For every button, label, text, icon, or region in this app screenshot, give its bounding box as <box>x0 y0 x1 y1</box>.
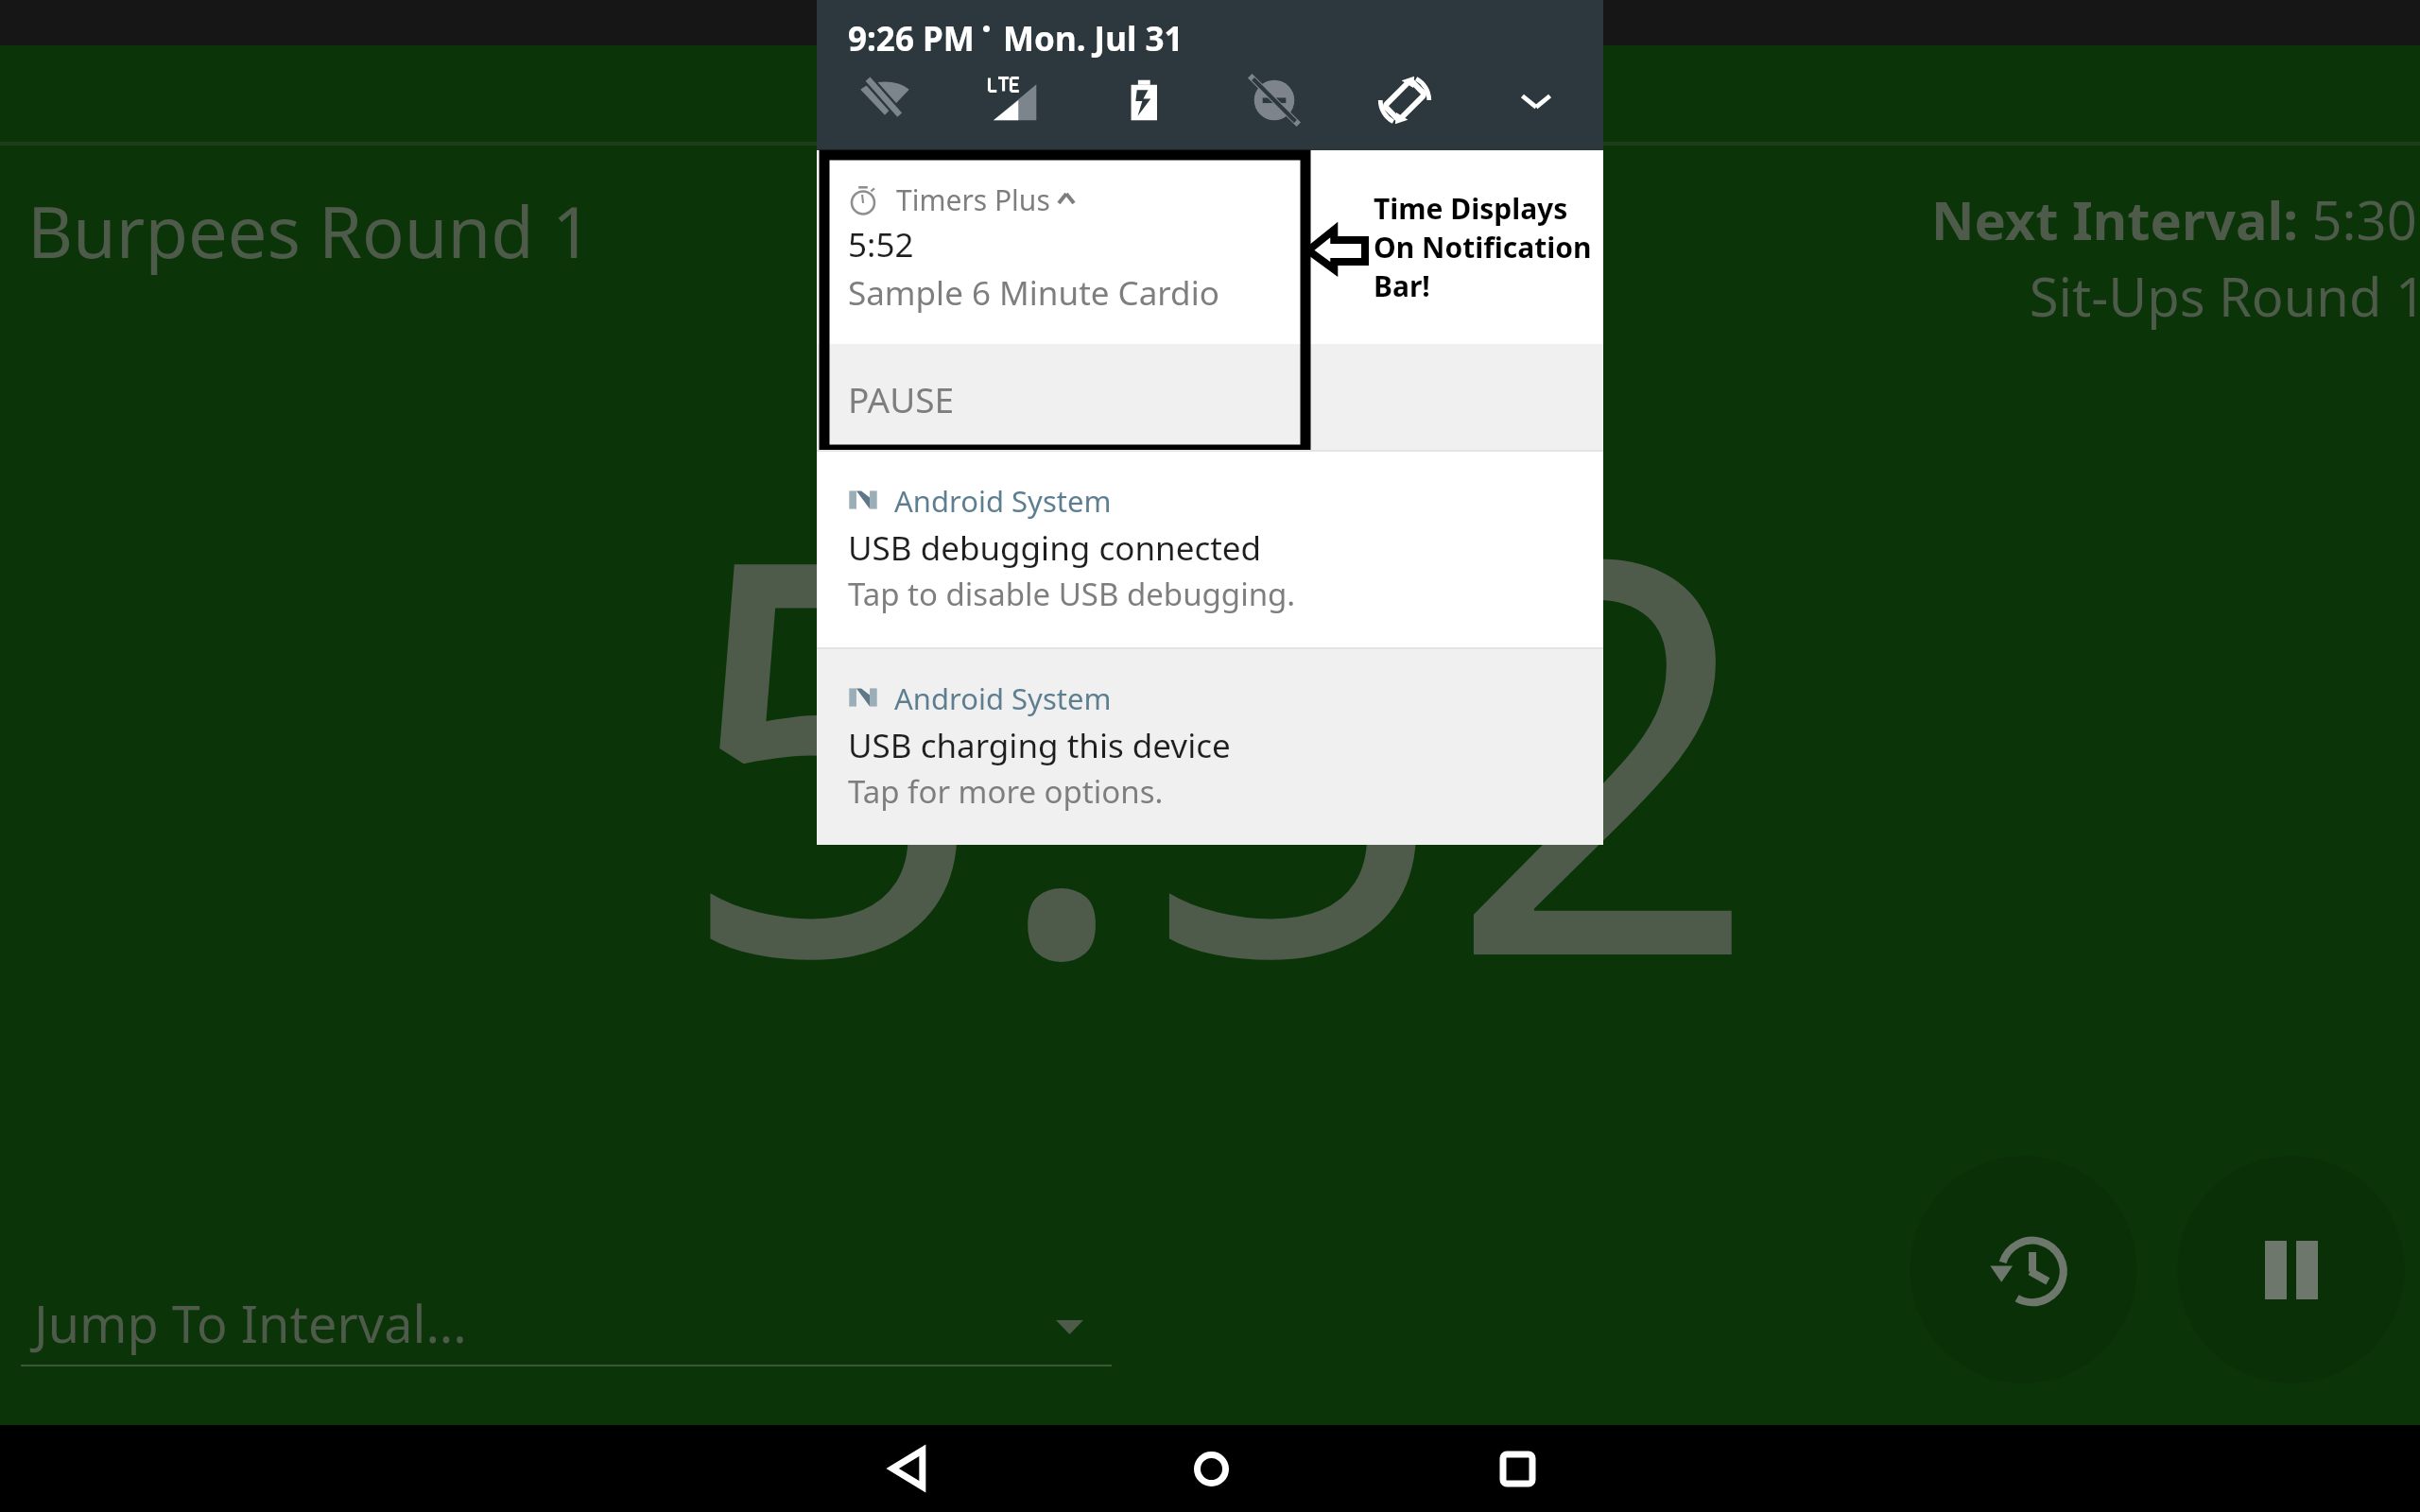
staticText: 5:52 <box>848 222 914 267</box>
button[interactable]: Expand quick settings <box>1491 55 1582 146</box>
staticText: PAUSE <box>848 375 955 422</box>
button[interactable]: Jump To Interval... <box>21 1288 1112 1366</box>
staticText: Mon. Jul 31 <box>1003 16 1184 61</box>
button[interactable]: Android System <box>817 649 1603 845</box>
staticText: USB debugging connected <box>848 525 1262 571</box>
staticText: Jump To Interval... <box>34 1288 467 1358</box>
staticText: 5:52 <box>676 370 1810 1114</box>
staticText: USB charging this device <box>848 723 1231 768</box>
staticText: Android System <box>894 481 1112 521</box>
button[interactable] <box>817 344 1603 450</box>
button[interactable]: Pause <box>2177 1156 2405 1383</box>
staticText: Tap to disable USB debugging. <box>848 573 1296 615</box>
staticText: Next Interval: <box>1931 183 2298 255</box>
button[interactable]: Home <box>1154 1425 1268 1512</box>
button[interactable]: Restart interval <box>1910 1156 2137 1383</box>
staticText: Tap for more options. <box>848 770 1164 813</box>
button[interactable]: Recents <box>1461 1425 1574 1512</box>
staticText: Timers Plus <box>896 180 1050 219</box>
staticText: Sample 6 Minute Cardio <box>848 270 1219 316</box>
staticText: Time Displays On Notification Bar! <box>1374 189 1592 305</box>
button[interactable]: Back <box>851 1425 964 1512</box>
staticText: 9:26 PM <box>848 16 975 61</box>
staticText: 5:30 <box>2298 183 2417 255</box>
staticText: Sit-Ups Round 1 <box>1480 260 2420 332</box>
staticText: Android System <box>894 679 1112 718</box>
staticText: Burpees Round 1 <box>27 183 593 279</box>
button[interactable]: Android System <box>817 452 1603 647</box>
